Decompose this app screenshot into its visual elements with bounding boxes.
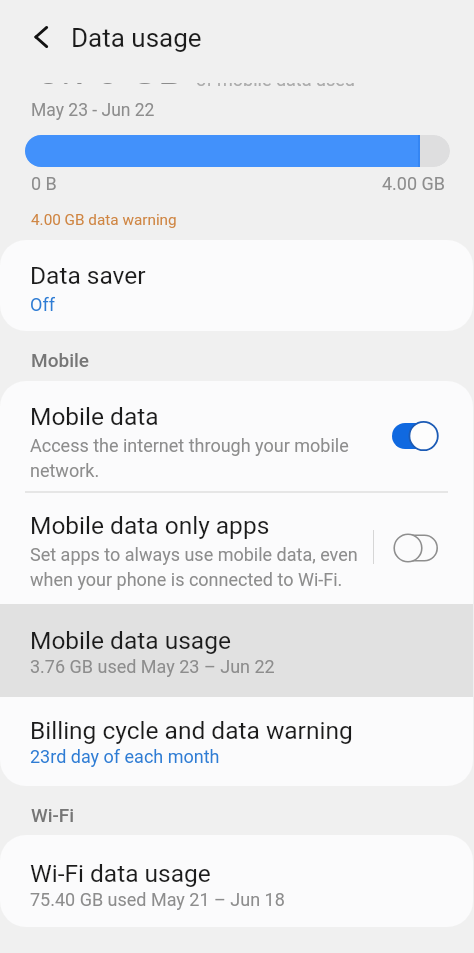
staticText: Access the internet through your mobile … — [30, 433, 380, 483]
staticText: 4.00 GB — [0, 173, 445, 194]
staticText: Mobile data — [30, 402, 159, 431]
staticText: 0 B — [31, 173, 57, 194]
staticText: Billing cycle and data warning — [30, 716, 353, 745]
staticText: of mobile data used — [196, 69, 355, 90]
staticText: Data saver — [30, 261, 146, 290]
button[interactable]: Navigate up — [25, 21, 57, 53]
staticText: Mobile — [31, 349, 90, 371]
button[interactable]: Mobile data — [0, 381, 473, 492]
staticText: 23rd day of each month — [30, 746, 220, 767]
button[interactable]: Data saver — [0, 240, 473, 331]
button[interactable]: Billing cycle and data warning — [0, 697, 473, 786]
staticText: Wi-Fi — [31, 804, 75, 826]
button[interactable]: Wi-Fi data usage — [0, 835, 473, 927]
staticText: 3.76 GB — [37, 45, 185, 94]
staticText: Mobile data usage — [30, 626, 231, 655]
button[interactable]: Mobile data only apps — [0, 492, 473, 604]
staticText: Data usage — [71, 23, 202, 53]
staticText: Off — [30, 294, 55, 315]
staticText: 75.40 GB used May 21 – Jun 18 — [30, 889, 285, 910]
staticText: Mobile data only apps — [30, 511, 270, 540]
staticText: 4.00 GB data warning — [31, 211, 177, 229]
staticText: 3.76 GB used May 23 – Jun 22 — [30, 656, 275, 677]
button[interactable]: Mobile data on — [392, 420, 444, 452]
staticText: Set apps to always use mobile data, even… — [30, 542, 380, 592]
staticText: May 23 - Jun 22 — [31, 100, 155, 121]
staticText: Wi-Fi data usage — [30, 859, 211, 888]
button[interactable]: Mobile data usage — [0, 604, 473, 697]
button[interactable]: Mobile data only apps off — [392, 532, 444, 564]
